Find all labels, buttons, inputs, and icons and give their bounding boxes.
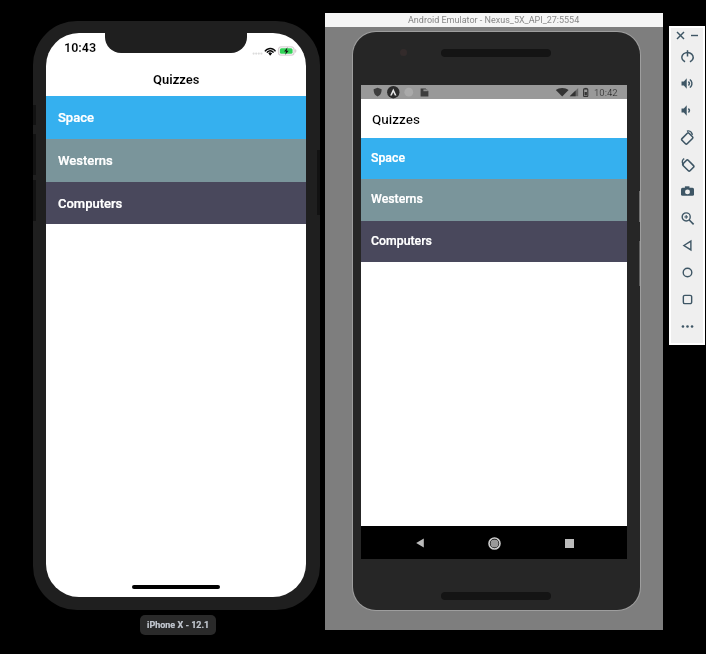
button[interactable]: Minimize bbox=[687, 28, 702, 43]
button[interactable]: Back bbox=[673, 232, 701, 258]
button[interactable]: Volume down bbox=[673, 97, 701, 123]
staticText: Space bbox=[371, 151, 405, 165]
staticText: 10:42 bbox=[594, 87, 618, 98]
staticText: Space bbox=[58, 110, 94, 125]
button[interactable]: Rotate right bbox=[673, 151, 701, 177]
button[interactable]: Space bbox=[361, 138, 627, 179]
staticText: 10:43 bbox=[64, 40, 97, 55]
button[interactable]: Westerns bbox=[46, 139, 306, 182]
button[interactable]: iPhone X - 12.1 bbox=[140, 615, 216, 635]
staticText: Quizzes bbox=[153, 72, 200, 87]
button[interactable]: Back bbox=[404, 527, 436, 559]
staticText: Westerns bbox=[371, 192, 423, 206]
staticText: Computers bbox=[58, 196, 123, 211]
button[interactable]: More options bbox=[673, 313, 701, 339]
button[interactable]: Home bbox=[478, 527, 510, 559]
button[interactable]: Screenshot bbox=[673, 178, 701, 204]
button[interactable]: Rotate left bbox=[673, 124, 701, 150]
staticText: Quizzes bbox=[372, 111, 420, 127]
button[interactable]: Home bbox=[673, 259, 701, 285]
button[interactable]: Close bbox=[673, 28, 688, 43]
button[interactable]: Volume up bbox=[673, 70, 701, 96]
staticText: Android Emulator - Nexus_5X_API_27:5554 bbox=[408, 15, 580, 26]
staticText: Westerns bbox=[58, 153, 113, 168]
button[interactable]: Westerns bbox=[361, 179, 627, 221]
button[interactable]: Overview bbox=[673, 286, 701, 312]
button[interactable]: Zoom bbox=[673, 205, 701, 231]
button[interactable]: Space bbox=[46, 96, 306, 139]
button[interactable]: Recents bbox=[553, 527, 585, 559]
button[interactable]: Computers bbox=[361, 221, 627, 262]
staticText: iPhone X - 12.1 bbox=[147, 620, 210, 631]
button[interactable]: Power bbox=[673, 43, 701, 69]
staticText: Computers bbox=[371, 234, 432, 248]
button[interactable]: Computers bbox=[46, 182, 306, 224]
